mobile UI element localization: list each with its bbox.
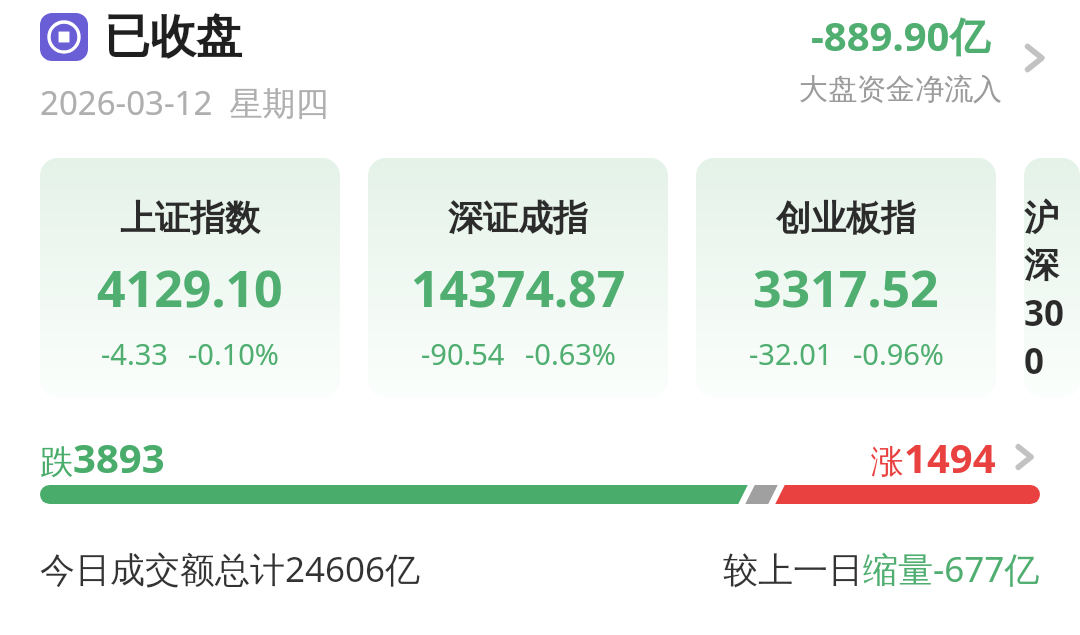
button[interactable]: 深证成指: [368, 158, 668, 398]
button[interactable]: 创业板指: [696, 158, 996, 398]
staticText: 跌3893: [40, 430, 165, 484]
staticText: 较上一日缩量-677亿: [723, 545, 1040, 593]
staticText: 4129.10: [97, 254, 283, 322]
button[interactable]: -889.90亿: [799, 8, 1052, 108]
button[interactable]: 上证指数: [40, 158, 340, 398]
button[interactable]: [40, 485, 1040, 504]
button[interactable]: 沪深300: [1024, 158, 1080, 398]
staticText: -4.33: [101, 334, 168, 373]
staticText: -889.90亿: [811, 8, 990, 63]
staticText: 沪深300: [1024, 196, 1080, 385]
staticText: -0.63%: [525, 334, 616, 373]
staticText: 今日成交额总计24606亿: [40, 545, 421, 593]
other: Market closed status: [40, 13, 88, 61]
staticText: 创业板指: [776, 196, 916, 240]
staticText: -32.01: [749, 334, 833, 373]
staticText: 2026-03-12 星期四: [40, 80, 329, 125]
staticText: 涨1494: [871, 430, 996, 484]
staticText: 14374.87: [411, 254, 626, 322]
staticText: 大盘资金净流入: [799, 71, 1002, 108]
staticText: -90.54: [421, 334, 505, 373]
staticText: -0.96%: [853, 334, 944, 373]
staticText: 深证成指: [448, 196, 588, 240]
staticText: 已收盘: [104, 8, 242, 66]
staticText: -0.10%: [188, 334, 279, 373]
button[interactable]: 跌3893: [40, 430, 1040, 484]
staticText: 上证指数: [120, 196, 260, 240]
staticText: 3317.52: [753, 254, 939, 322]
